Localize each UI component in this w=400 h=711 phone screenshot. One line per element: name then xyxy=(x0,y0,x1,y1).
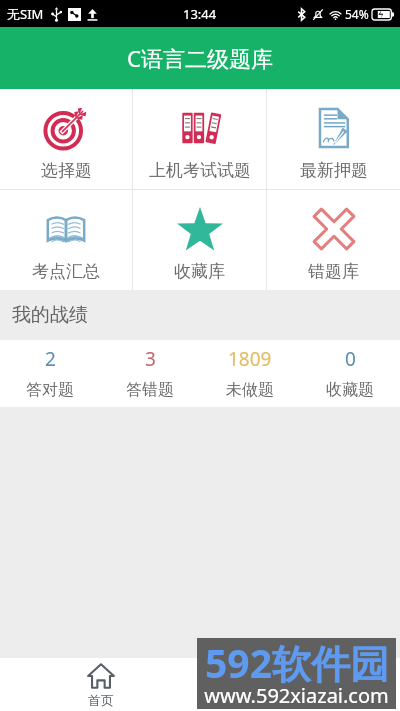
button[interactable]: 收藏库 xyxy=(133,190,266,290)
staticText: 13:44 xyxy=(183,5,217,23)
staticText: 选择题 xyxy=(41,160,92,181)
button[interactable]: 考点汇总 xyxy=(0,190,132,290)
button[interactable]: 上机考试试题 xyxy=(133,89,266,189)
button[interactable]: 3 xyxy=(100,340,200,407)
staticText: 考点汇总 xyxy=(32,261,100,282)
staticText: 未做题 xyxy=(226,380,274,400)
button[interactable]: 最新押题 xyxy=(267,89,400,189)
staticText: 上机考试试题 xyxy=(149,160,251,181)
staticText: 592软件园 xyxy=(205,636,389,689)
staticText: 无SIM xyxy=(7,5,44,23)
staticText: 3 xyxy=(145,346,156,372)
button[interactable]: 2 xyxy=(0,340,100,407)
staticText: 0 xyxy=(345,346,356,372)
staticText: 收藏题 xyxy=(326,380,374,400)
staticText: 答对题 xyxy=(26,380,74,400)
staticText: 首页 xyxy=(88,692,114,708)
staticText: 我的战绩 xyxy=(12,303,88,327)
staticText: 54% xyxy=(345,6,369,22)
button[interactable]: 首页 xyxy=(87,663,115,708)
button[interactable]: 0 xyxy=(300,340,400,407)
staticText: 最新押题 xyxy=(300,160,368,181)
button[interactable]: 错题库 xyxy=(267,190,400,290)
staticText: 1809 xyxy=(228,346,272,372)
button[interactable]: 选择题 xyxy=(0,89,132,189)
button[interactable]: 1809 xyxy=(200,340,300,407)
staticText: 收藏库 xyxy=(174,261,225,282)
staticText: www.592xiazai.com xyxy=(204,682,389,709)
staticText: 错题库 xyxy=(308,261,359,282)
staticText: 答错题 xyxy=(126,380,174,400)
staticText: 2 xyxy=(45,346,56,372)
staticText: C语言二级题库 xyxy=(127,43,273,73)
